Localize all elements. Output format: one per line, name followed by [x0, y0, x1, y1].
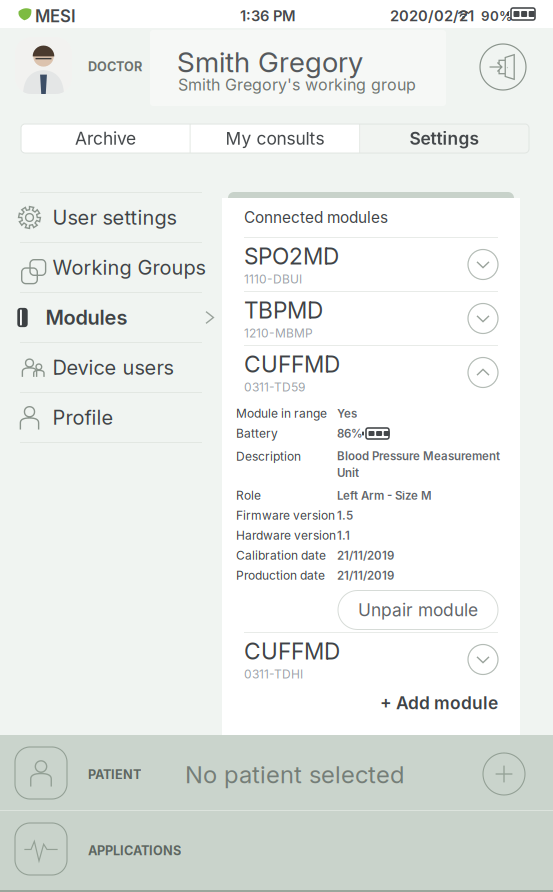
- button[interactable]: Archive: [21, 124, 190, 153]
- staticText: 1.1: [337, 529, 350, 542]
- button[interactable]: CUFFMD: [244, 633, 498, 686]
- staticText: CUFFMD: [244, 637, 340, 665]
- staticText: Hardware version: [236, 528, 336, 543]
- staticText: Calibration date: [236, 548, 326, 563]
- staticText: Connected modules: [244, 208, 388, 227]
- staticText: TBPMD: [244, 296, 323, 324]
- button[interactable]: + Add module: [380, 692, 498, 713]
- button[interactable]: Profile: [0, 393, 222, 442]
- staticText: Archive: [75, 128, 136, 149]
- staticText: Module in range: [236, 406, 327, 421]
- staticText: 86%: [337, 427, 363, 440]
- staticText: Device users: [52, 355, 173, 380]
- button[interactable]: PATIENT: [0, 735, 553, 810]
- staticText: CUFFMD: [244, 350, 340, 378]
- staticText: Modules: [45, 305, 127, 330]
- staticText: 1:36 PM: [240, 7, 296, 25]
- staticText: Yes: [337, 407, 357, 420]
- staticText: Unit: [337, 466, 359, 480]
- staticText: 1.5: [337, 509, 353, 522]
- staticText: Firmware version: [236, 508, 335, 523]
- button[interactable]: User settings: [0, 193, 222, 242]
- staticText: Profile: [52, 405, 113, 430]
- staticText: User settings: [52, 205, 176, 230]
- staticText: SPO2MD: [244, 242, 339, 270]
- staticText: Smith Gregory: [177, 45, 363, 79]
- staticText: DOCTOR: [88, 59, 142, 74]
- staticText: PATIENT: [88, 767, 141, 782]
- staticText: 21/11/2019: [337, 549, 394, 562]
- button[interactable]: Log out: [480, 44, 526, 90]
- staticText: + Add module: [380, 692, 498, 713]
- staticText: 2020/02/21: [390, 7, 474, 25]
- staticText: Unpair module: [358, 599, 478, 620]
- staticText: Smith Gregory's working group: [178, 75, 416, 94]
- staticText: Role: [236, 488, 261, 503]
- button[interactable]: Device users: [0, 343, 222, 392]
- staticText: No patient selected: [185, 760, 404, 789]
- staticText: Left Arm - Size M: [337, 489, 432, 502]
- staticText: 90%: [481, 8, 512, 24]
- staticText: 0311-TDHI: [244, 667, 303, 681]
- button[interactable]: APPLICATIONS: [0, 811, 553, 891]
- button[interactable]: Settings: [360, 124, 529, 153]
- staticText: MESI: [35, 6, 76, 26]
- staticText: APPLICATIONS: [88, 843, 181, 858]
- staticText: My consults: [225, 128, 324, 149]
- staticText: 0311-TD59: [244, 380, 305, 394]
- staticText: Working Groups: [52, 255, 205, 280]
- staticText: Production date: [236, 568, 325, 583]
- button[interactable]: My consults: [191, 124, 359, 153]
- staticText: 21/11/2019: [337, 569, 394, 582]
- staticText: Description: [236, 449, 301, 464]
- button[interactable]: Working Groups: [0, 243, 222, 292]
- button[interactable]: CUFFMD: [244, 346, 498, 399]
- button[interactable]: Unpair module: [338, 590, 498, 629]
- staticText: 1210-MBMP: [244, 326, 313, 340]
- button[interactable]: TBPMD: [244, 292, 498, 345]
- staticText: Settings: [410, 128, 480, 149]
- staticText: Battery: [236, 426, 278, 441]
- staticText: Blood Pressure Measurement: [337, 449, 500, 463]
- button[interactable]: SPO2MD: [244, 238, 498, 291]
- staticText: 1110-DBUI: [244, 272, 302, 286]
- button[interactable]: Modules: [0, 293, 222, 342]
